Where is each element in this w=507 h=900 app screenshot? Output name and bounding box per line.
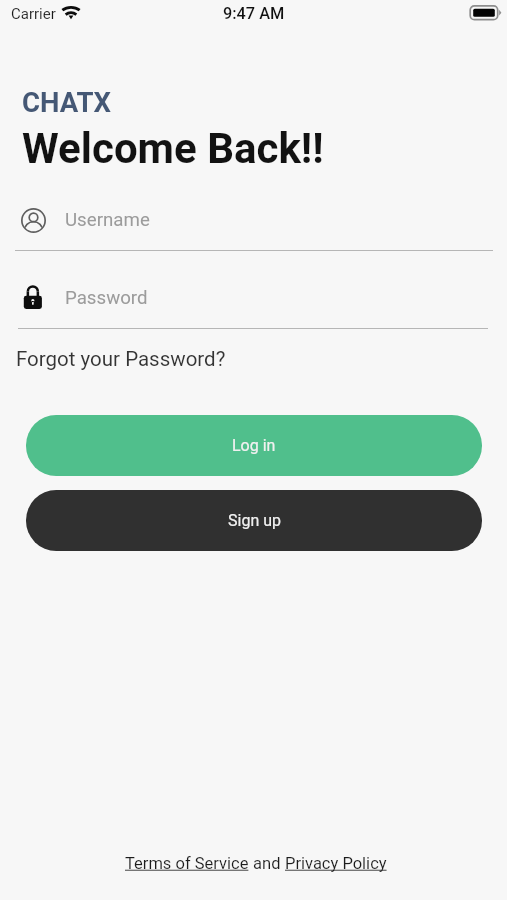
- button[interactable]: Password: [0, 274, 507, 329]
- button[interactable]: Privacy Policy: [285, 854, 387, 873]
- button[interactable]: Forgot your Password?: [16, 347, 226, 371]
- staticText: Welcome Back!!: [22, 124, 324, 173]
- other: Wi-Fi signal: [58, 2, 86, 24]
- button[interactable]: Username: [0, 196, 507, 251]
- staticText: CHATX: [22, 86, 112, 118]
- button[interactable]: Terms of Service: [125, 854, 249, 873]
- staticText: Password: [65, 287, 148, 309]
- other: Battery full: [469, 4, 503, 22]
- staticText: Log in: [232, 436, 276, 455]
- staticText: Carrier: [11, 5, 56, 23]
- staticText: and: [249, 854, 285, 873]
- staticText: Username: [65, 209, 150, 231]
- staticText: Sign up: [228, 511, 281, 530]
- staticText: 9:47 AM: [223, 4, 285, 23]
- button[interactable]: Log in: [26, 415, 482, 476]
- button[interactable]: Sign up: [26, 490, 482, 551]
